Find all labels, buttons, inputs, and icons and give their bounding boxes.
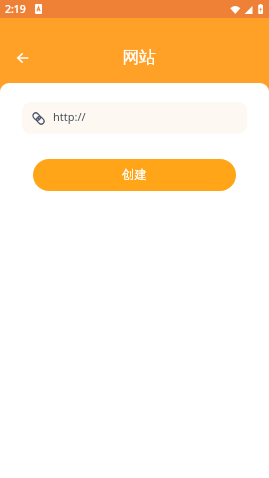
button[interactable]: 创建 — [33, 159, 236, 191]
staticText: 网站 — [109, 47, 169, 68]
staticText: 2:19 — [5, 2, 26, 16]
button[interactable]: http:// — [22, 102, 247, 134]
staticText: 创建 — [122, 167, 147, 183]
button[interactable]: Back — [11, 46, 34, 69]
staticText: http:// — [53, 109, 86, 124]
